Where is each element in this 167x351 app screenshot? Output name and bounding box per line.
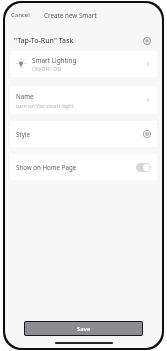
staticText: "Tap-To-Run" Task — [14, 36, 74, 46]
staticText: Save — [77, 325, 91, 333]
staticText: Smart Lighting — [32, 56, 77, 65]
button[interactable]: Smart Lighting — [10, 51, 157, 77]
button[interactable]: Add task — [141, 35, 153, 47]
button[interactable]: Name — [10, 86, 157, 114]
button[interactable]: Style — [10, 121, 157, 147]
staticText: Name — [16, 92, 34, 100]
button[interactable]: Cancel — [10, 10, 31, 20]
staticText: turn on the smart light — [16, 102, 74, 109]
staticText: Style — [16, 130, 30, 138]
staticText: ON/OFF: ON — [32, 66, 62, 73]
button[interactable]: Show on Home Page — [136, 163, 151, 172]
staticText: Create new Smart — [44, 11, 97, 20]
staticText: Cancel — [11, 11, 30, 19]
staticText: Show on Home Page — [16, 163, 77, 171]
button[interactable]: Show on Home Page — [10, 154, 157, 180]
button[interactable]: Save — [25, 322, 142, 335]
